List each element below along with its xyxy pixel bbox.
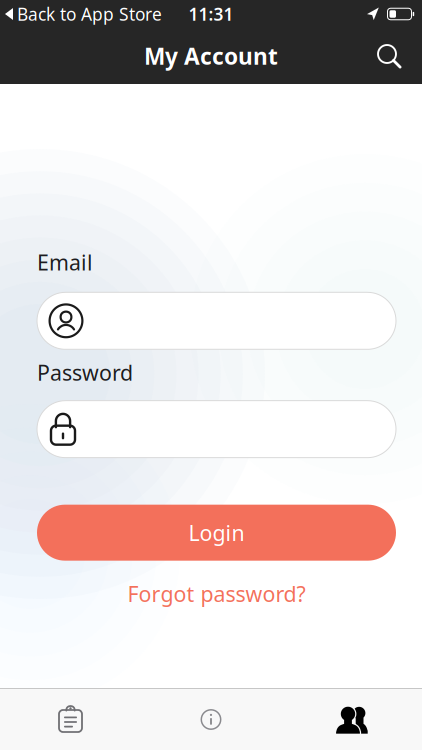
staticText: Back to App Store [17,2,162,25]
button[interactable]: Login [37,505,396,561]
button[interactable]: Email [37,292,396,349]
staticText: 11:31 [188,2,233,25]
staticText: Login [188,518,244,547]
button[interactable]: My Account [281,689,422,750]
button[interactable]: Search [377,44,422,68]
staticText: Forgot password? [127,580,305,608]
staticText: Email [37,248,93,276]
button[interactable]: Back to App Store [0,2,162,25]
button[interactable]: Forgot password? [37,580,396,608]
button[interactable]: Password [37,401,396,458]
button[interactable]: Info [141,689,281,750]
staticText: My Account [144,41,278,71]
button[interactable]: Tasks [0,689,141,750]
staticText: Password [37,358,133,387]
